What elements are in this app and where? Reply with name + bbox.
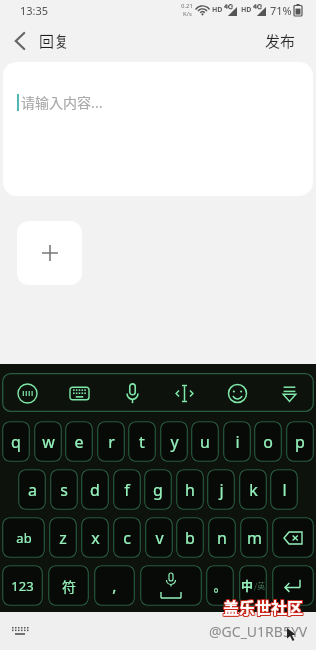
staticText: k [249,479,258,501]
staticText: m [247,527,262,549]
staticText: HD [241,5,252,15]
staticText: b [185,527,195,549]
staticText: o [263,431,273,453]
staticText: v [155,527,164,549]
button[interactable]: d [81,469,109,510]
button[interactable] [117,378,147,408]
button[interactable]: s [50,469,78,510]
button[interactable] [169,378,199,408]
button[interactable]: w [34,421,62,462]
button[interactable] [12,625,29,637]
staticText: 符 [62,576,76,596]
staticText: 发布 [265,30,296,52]
button[interactable]: 。 [206,565,234,606]
staticText: 123 [11,577,34,595]
button[interactable] [64,378,94,408]
button[interactable]: t [128,421,156,462]
staticText: 盖乐世社区 [224,595,305,618]
button[interactable]: , [94,565,135,606]
staticText: a [28,479,37,501]
staticText: 0.21 [181,2,193,10]
button[interactable]: m [240,517,268,558]
staticText: n [217,527,227,549]
staticText: 中 [241,577,254,594]
button[interactable]: o [254,421,282,462]
button[interactable]: l [270,469,298,510]
button[interactable]: a [18,469,46,510]
button[interactable]: v [145,517,173,558]
button[interactable] [272,565,314,606]
button[interactable]: ab [2,517,45,558]
staticText: z [59,527,67,549]
button[interactable]: j [207,469,235,510]
staticText: 71% [270,3,292,18]
staticText: 请输入内容... [21,92,103,112]
button[interactable]: u [191,421,219,462]
button[interactable]: f [113,469,141,510]
staticText: 盖乐世社区 [222,595,303,618]
button[interactable] [12,378,42,408]
staticText: @GC_U1RB5YV [209,622,308,641]
staticText: 盖乐世社区 [222,594,303,617]
staticText: e [74,431,84,453]
staticText: 盖乐世社区 [224,596,305,619]
button[interactable]: c [113,517,141,558]
button[interactable]: e [65,421,93,462]
staticText: K/s [183,10,192,18]
staticText: 13:35 [20,3,49,18]
staticText: 盖乐世社区 [223,594,304,617]
button[interactable]: y [160,421,188,462]
button[interactable]: b [176,517,204,558]
button[interactable]: x [81,517,109,558]
button[interactable]: i [223,421,251,462]
staticText: /英 [254,580,266,592]
button[interactable]: 123 [2,565,43,606]
staticText: s [60,479,68,501]
staticText: t [139,431,145,453]
staticText: r [108,431,115,453]
button[interactable]: g [144,469,172,510]
button[interactable]: 符 [48,565,89,606]
staticText: g [153,479,163,501]
staticText: q [11,431,21,453]
button[interactable] [274,378,304,408]
staticText: 盖乐世社区 [224,594,305,617]
staticText: l [282,479,287,501]
button[interactable]: p [286,421,314,462]
staticText: 盖乐世社区 [223,596,304,619]
staticText: 盖乐世社区 [222,596,303,619]
button[interactable]: h [176,469,204,510]
button[interactable]: q [2,421,30,462]
button[interactable]: r [97,421,125,462]
staticText: , [112,575,117,597]
button[interactable]: 发布 [265,30,296,52]
staticText: c [123,527,131,549]
staticText: x [91,527,100,549]
button[interactable]: n [208,517,236,558]
staticText: ab [16,529,32,547]
button[interactable]: 请输入内容... [3,62,313,196]
staticText: u [200,431,210,453]
button[interactable]: 中 [239,565,267,606]
button[interactable]: 回复 [14,30,70,52]
staticText: y [170,431,179,453]
button[interactable] [140,565,202,606]
button[interactable]: k [239,469,267,510]
staticText: p [295,431,305,453]
button[interactable] [17,221,82,285]
button[interactable]: z [49,517,77,558]
staticText: 盖乐世社区 [223,595,304,618]
staticText: 。 [213,576,227,595]
button[interactable] [272,517,314,558]
staticText: w [42,431,55,453]
staticText: 回复 [39,30,70,52]
staticText: HD [212,5,223,15]
staticText: f [124,479,130,501]
staticText: h [185,479,195,501]
button[interactable] [222,378,252,408]
staticText: j [219,479,224,501]
staticText: i [235,431,240,453]
staticText: d [90,479,100,501]
